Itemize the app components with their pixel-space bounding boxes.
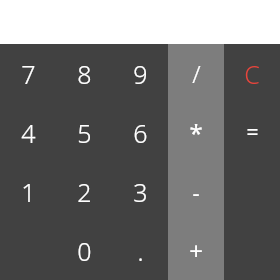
- staticText: =: [246, 118, 259, 147]
- button[interactable]: +: [168, 221, 224, 280]
- button[interactable]: 5: [56, 103, 112, 162]
- button[interactable]: 0: [56, 221, 112, 280]
- staticText: 6: [133, 116, 148, 150]
- staticText: 0: [77, 234, 92, 268]
- button[interactable]: .: [112, 221, 168, 280]
- button[interactable]: C: [224, 44, 280, 103]
- staticText: -: [192, 177, 200, 207]
- staticText: 8: [77, 57, 92, 91]
- button[interactable]: =: [224, 103, 280, 162]
- staticText: 7: [21, 57, 36, 91]
- button[interactable]: -: [168, 162, 224, 221]
- button[interactable]: 9: [112, 44, 168, 103]
- staticText: 4: [21, 116, 36, 150]
- button[interactable]: 3: [112, 162, 168, 221]
- button[interactable]: 8: [56, 44, 112, 103]
- staticText: 2: [77, 175, 92, 209]
- button[interactable]: *: [168, 103, 224, 162]
- button[interactable]: 7: [0, 44, 56, 103]
- staticText: /: [192, 57, 201, 90]
- button[interactable]: 2: [56, 162, 112, 221]
- button[interactable]: 4: [0, 103, 56, 162]
- button[interactable]: /: [168, 44, 224, 103]
- staticText: 5: [77, 116, 92, 150]
- staticText: +: [189, 234, 203, 267]
- staticText: C: [244, 57, 260, 91]
- button[interactable]: 6: [112, 103, 168, 162]
- staticText: 3: [133, 175, 148, 209]
- button[interactable]: 1: [0, 162, 56, 221]
- staticText: 1: [21, 175, 36, 209]
- staticText: 9: [133, 57, 148, 91]
- staticText: .: [137, 234, 144, 268]
- staticText: *: [189, 116, 203, 149]
